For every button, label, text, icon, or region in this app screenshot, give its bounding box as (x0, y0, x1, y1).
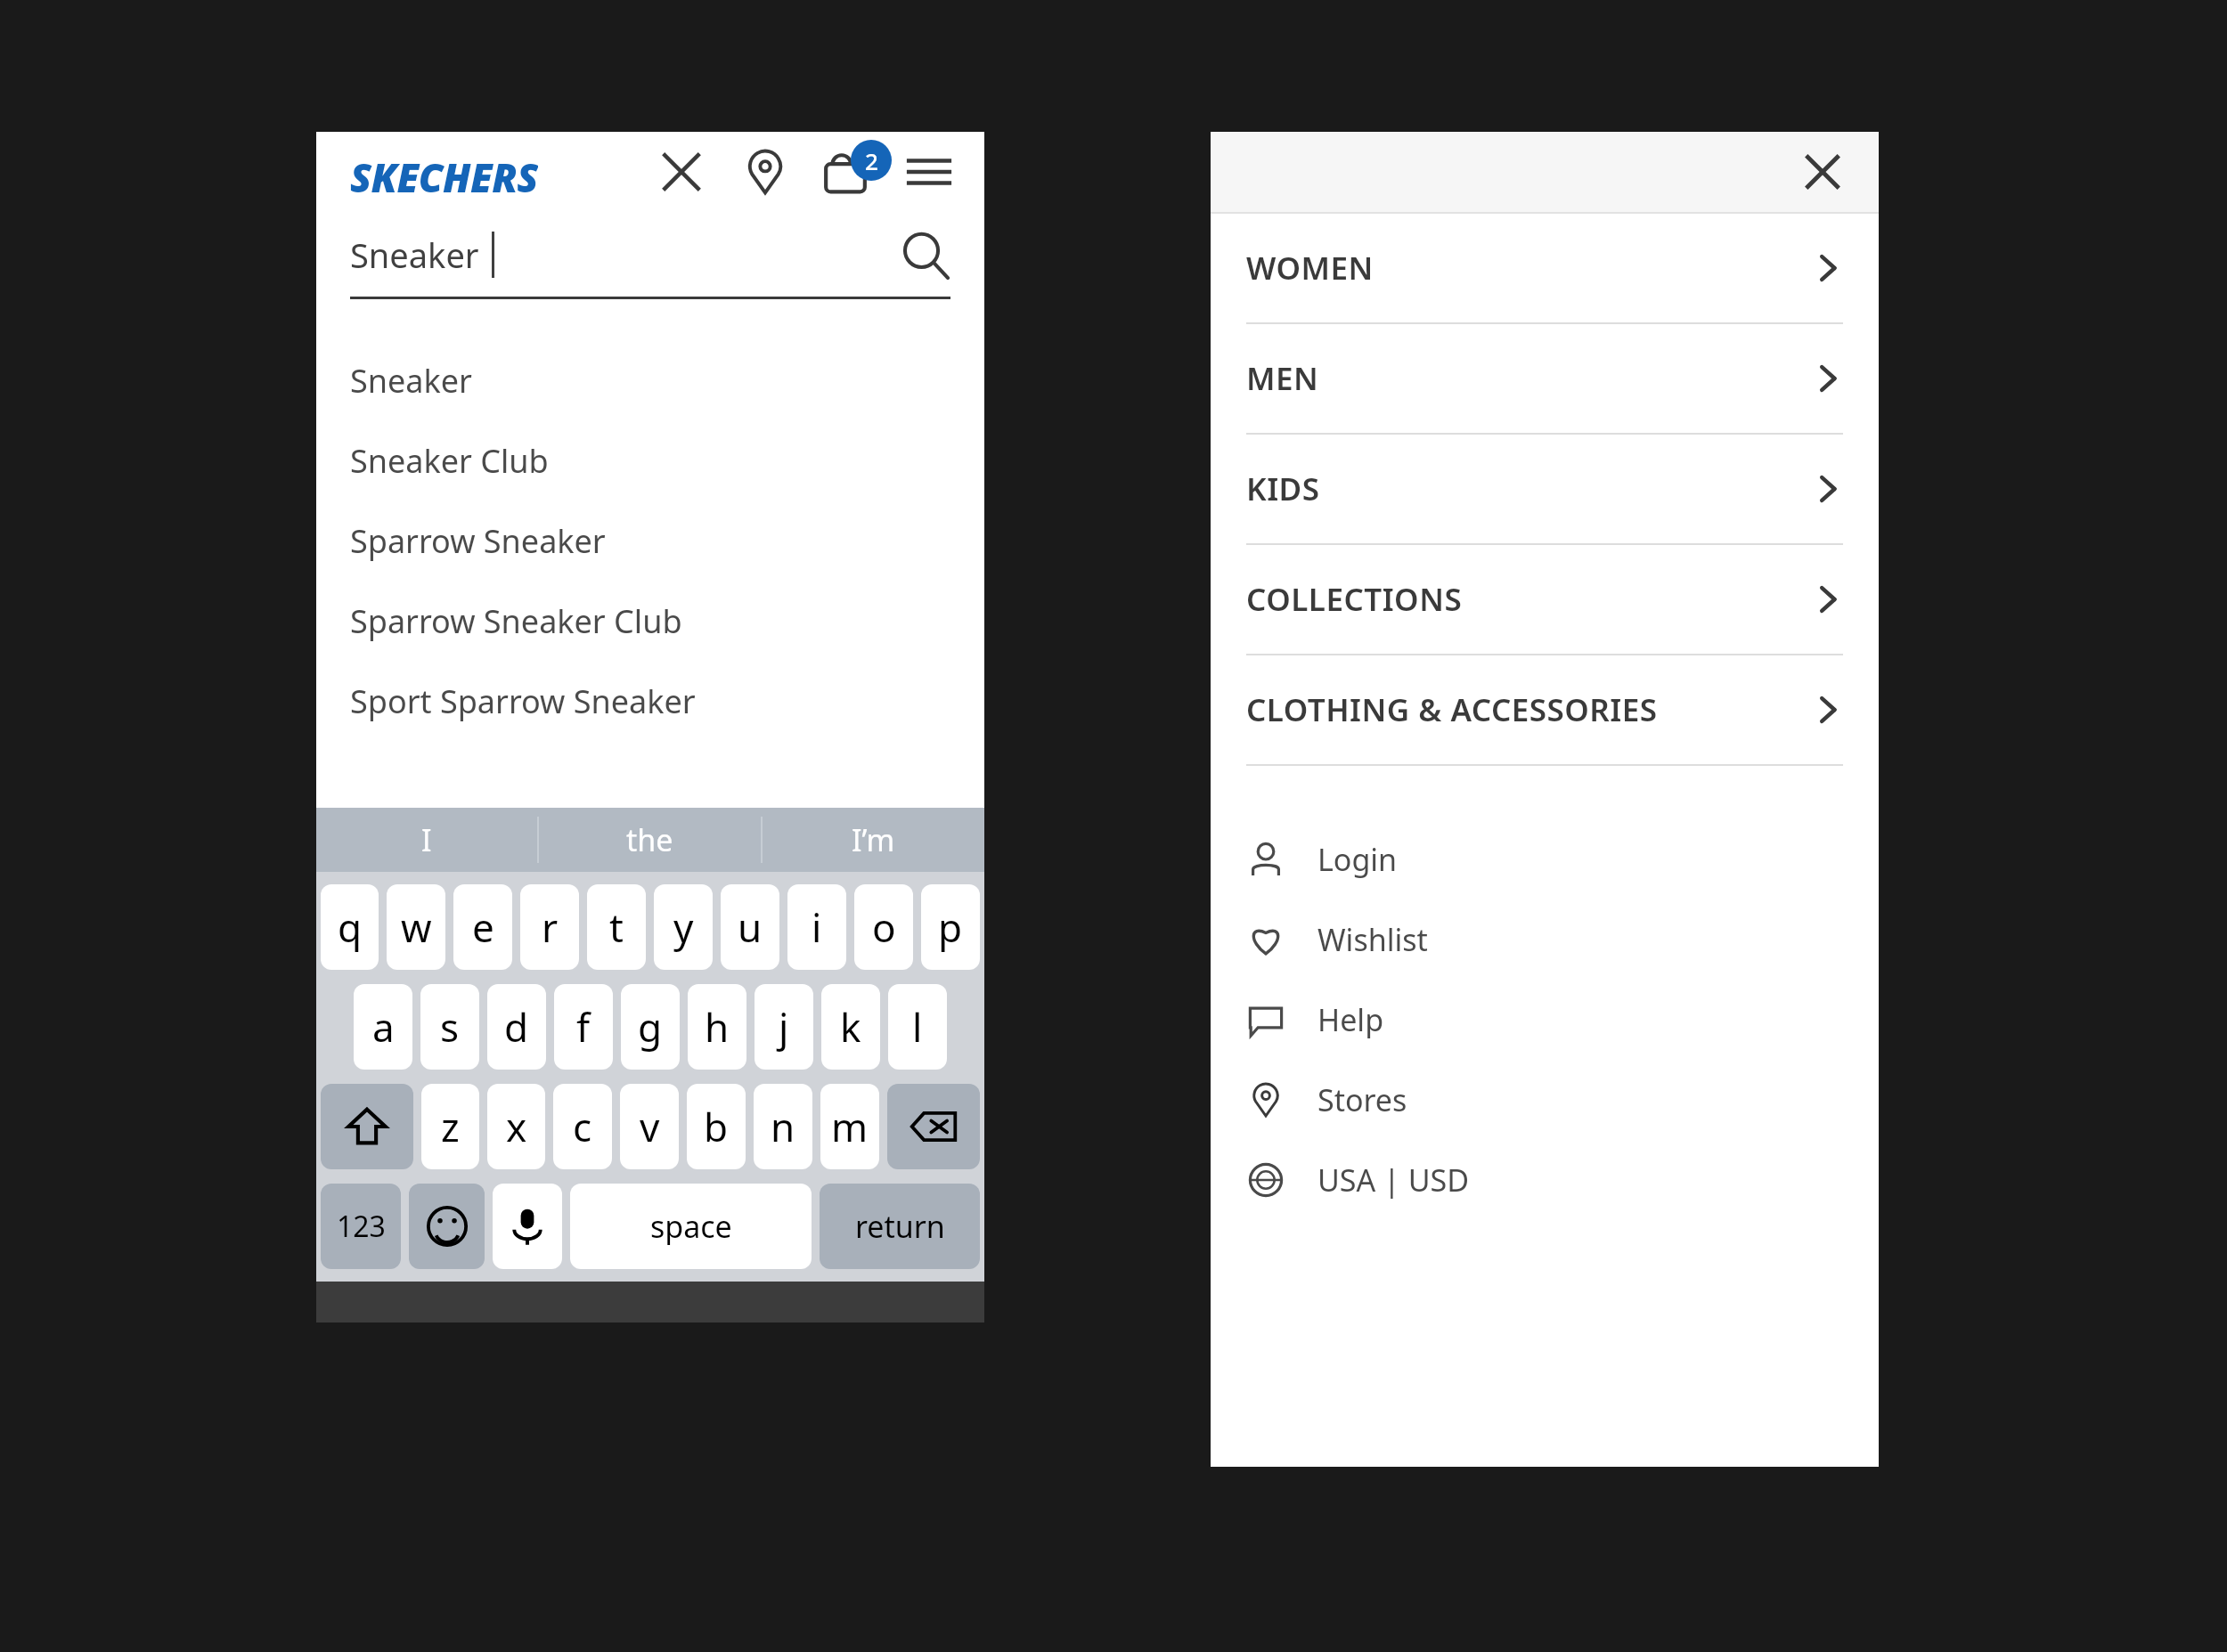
button[interactable]: Sparrow Sneaker Club (316, 581, 984, 661)
staticText: c (573, 1100, 592, 1153)
staticText: b (704, 1100, 729, 1153)
staticText: n (771, 1100, 795, 1153)
button[interactable]: Help (1211, 980, 1879, 1060)
staticText: return (855, 1206, 945, 1247)
button[interactable]: p (921, 884, 980, 970)
staticText: s (440, 1000, 460, 1054)
button[interactable]: Backspace (887, 1084, 980, 1169)
staticText: Sneaker (350, 359, 472, 403)
button[interactable]: b (687, 1084, 746, 1169)
button[interactable]: WOMEN (1211, 214, 1879, 322)
staticText: COLLECTIONS (1246, 578, 1463, 621)
staticText: u (738, 900, 763, 954)
button[interactable]: CLOTHING & ACCESSORIES (1211, 655, 1879, 764)
button[interactable]: a (354, 984, 412, 1070)
button[interactable]: KIDS (1211, 435, 1879, 543)
staticText: 2 (865, 145, 878, 176)
button[interactable]: I’m (763, 808, 984, 872)
staticText: Sparrow Sneaker (350, 519, 606, 563)
staticText: WOMEN (1246, 247, 1374, 289)
button[interactable]: Sport Sparrow Sneaker (316, 661, 984, 741)
staticText: i (812, 900, 822, 954)
button[interactable]: f (554, 984, 613, 1070)
button[interactable]: r (520, 884, 579, 970)
button[interactable]: Close search (653, 143, 710, 200)
staticText: x (506, 1100, 527, 1153)
staticText: v (640, 1100, 660, 1153)
staticText: o (872, 900, 896, 954)
staticText: t (609, 900, 624, 954)
button[interactable]: o (854, 884, 913, 970)
staticText: l (912, 1000, 923, 1054)
button[interactable]: the (539, 808, 761, 872)
button[interactable]: n (754, 1084, 812, 1169)
button[interactable]: s (420, 984, 479, 1070)
button[interactable]: Dictation (493, 1184, 562, 1269)
staticText: f (576, 1000, 591, 1054)
button[interactable]: Search (899, 229, 950, 281)
staticText: the (626, 819, 673, 860)
staticText: CLOTHING & ACCESSORIES (1246, 688, 1658, 731)
staticText: I’m (852, 819, 895, 860)
staticText: p (938, 900, 963, 954)
button[interactable]: Menu (901, 143, 958, 200)
staticText: Sparrow Sneaker Club (350, 599, 682, 643)
button[interactable]: Wishlist (1211, 899, 1879, 980)
staticText: j (779, 1000, 789, 1054)
button[interactable]: Shopping bag (817, 143, 874, 200)
button[interactable]: USA | USD (1211, 1140, 1879, 1220)
button[interactable]: m (820, 1084, 879, 1169)
staticText: Sneaker Club (350, 439, 549, 483)
button[interactable]: COLLECTIONS (1211, 545, 1879, 654)
button[interactable]: space (570, 1184, 812, 1269)
button[interactable]: Sneaker (350, 212, 950, 297)
button[interactable]: Login (1211, 819, 1879, 899)
staticText: KIDS (1246, 468, 1320, 510)
button[interactable]: t (587, 884, 646, 970)
button[interactable]: k (821, 984, 880, 1070)
button[interactable]: MEN (1211, 324, 1879, 433)
staticText: Login (1317, 839, 1398, 880)
button[interactable]: d (487, 984, 546, 1070)
button[interactable]: Sneaker Club (316, 420, 984, 500)
staticText: SKECHERS (350, 151, 538, 193)
button[interactable]: return (820, 1184, 980, 1269)
button[interactable]: y (654, 884, 713, 970)
staticText: m (831, 1100, 869, 1153)
button[interactable]: h (688, 984, 746, 1070)
button[interactable]: x (487, 1084, 545, 1169)
button[interactable]: w (387, 884, 445, 970)
button[interactable]: g (621, 984, 680, 1070)
staticText: k (840, 1000, 861, 1054)
button[interactable]: Stores (1211, 1060, 1879, 1140)
button[interactable]: Stores (737, 143, 794, 200)
button[interactable]: Close menu (1795, 144, 1850, 199)
button[interactable]: e (453, 884, 512, 970)
button[interactable]: v (620, 1084, 679, 1169)
staticText: Wishlist (1317, 919, 1428, 960)
button[interactable]: Sparrow Sneaker (316, 500, 984, 581)
button[interactable]: 123 (321, 1184, 401, 1269)
staticText: z (441, 1100, 460, 1153)
button[interactable]: l (888, 984, 947, 1070)
staticText: USA | USD (1317, 1160, 1469, 1200)
staticText: e (472, 900, 494, 954)
button[interactable]: I (316, 808, 537, 872)
button[interactable]: Shift (321, 1084, 413, 1169)
staticText: Sport Sparrow Sneaker (350, 680, 696, 723)
staticText: a (372, 1000, 395, 1054)
staticText: y (673, 900, 694, 954)
button[interactable]: j (755, 984, 813, 1070)
staticText: d (504, 1000, 529, 1054)
button[interactable]: i (787, 884, 846, 970)
button[interactable]: Emoji (409, 1184, 485, 1269)
button[interactable]: u (721, 884, 779, 970)
staticText: space (650, 1206, 732, 1247)
staticText: w (401, 900, 432, 954)
button[interactable]: z (421, 1084, 479, 1169)
button[interactable]: c (553, 1084, 612, 1169)
button[interactable]: Sneaker (316, 340, 984, 420)
staticText: Stores (1317, 1079, 1407, 1120)
button[interactable]: q (321, 884, 379, 970)
staticText: q (338, 900, 363, 954)
